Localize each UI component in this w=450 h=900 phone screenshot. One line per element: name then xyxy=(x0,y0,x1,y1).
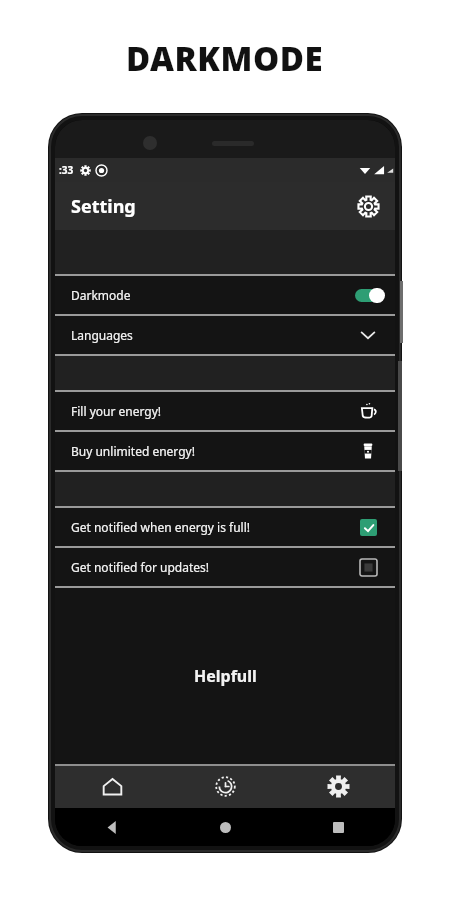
button[interactable]: Get notified for updates! xyxy=(55,548,395,586)
button[interactable]: Recent apps xyxy=(282,808,395,846)
button[interactable]: Fill your energy! xyxy=(55,392,395,430)
staticText: Fill your energy! xyxy=(71,403,355,419)
button[interactable]: Checked xyxy=(356,515,380,539)
button[interactable]: Buy unlimited energy! xyxy=(55,432,395,470)
staticText: Languages xyxy=(71,327,355,343)
button[interactable]: Unchecked xyxy=(356,555,380,579)
button[interactable]: Home xyxy=(55,764,169,808)
button[interactable]: Back xyxy=(55,808,169,846)
button[interactable]: Helpfull xyxy=(55,588,395,764)
button[interactable]: Dark mode toggle xyxy=(355,288,381,303)
staticText: Helpfull xyxy=(194,665,257,687)
button[interactable]: Darkmode xyxy=(55,276,395,314)
button[interactable]: Buy unlimited energy xyxy=(356,439,380,463)
button[interactable]: Settings xyxy=(282,764,395,808)
staticText: :33 xyxy=(59,163,74,177)
staticText: Get notified for updates! xyxy=(71,559,355,575)
button[interactable]: Get notified when energy is full! xyxy=(55,508,395,546)
button[interactable]: Languages xyxy=(55,316,395,354)
staticText: DARKMODE xyxy=(126,36,324,81)
staticText: Buy unlimited energy! xyxy=(71,443,355,459)
button[interactable]: History xyxy=(169,764,282,808)
staticText: Get notified when energy is full! xyxy=(71,519,355,535)
button[interactable]: Settings xyxy=(351,189,385,223)
button[interactable]: Expand languages xyxy=(356,323,380,347)
button[interactable]: Fill your energy xyxy=(356,399,380,423)
button[interactable]: Home xyxy=(169,808,282,846)
staticText: Darkmode xyxy=(71,287,355,303)
staticText: Setting xyxy=(71,194,136,219)
